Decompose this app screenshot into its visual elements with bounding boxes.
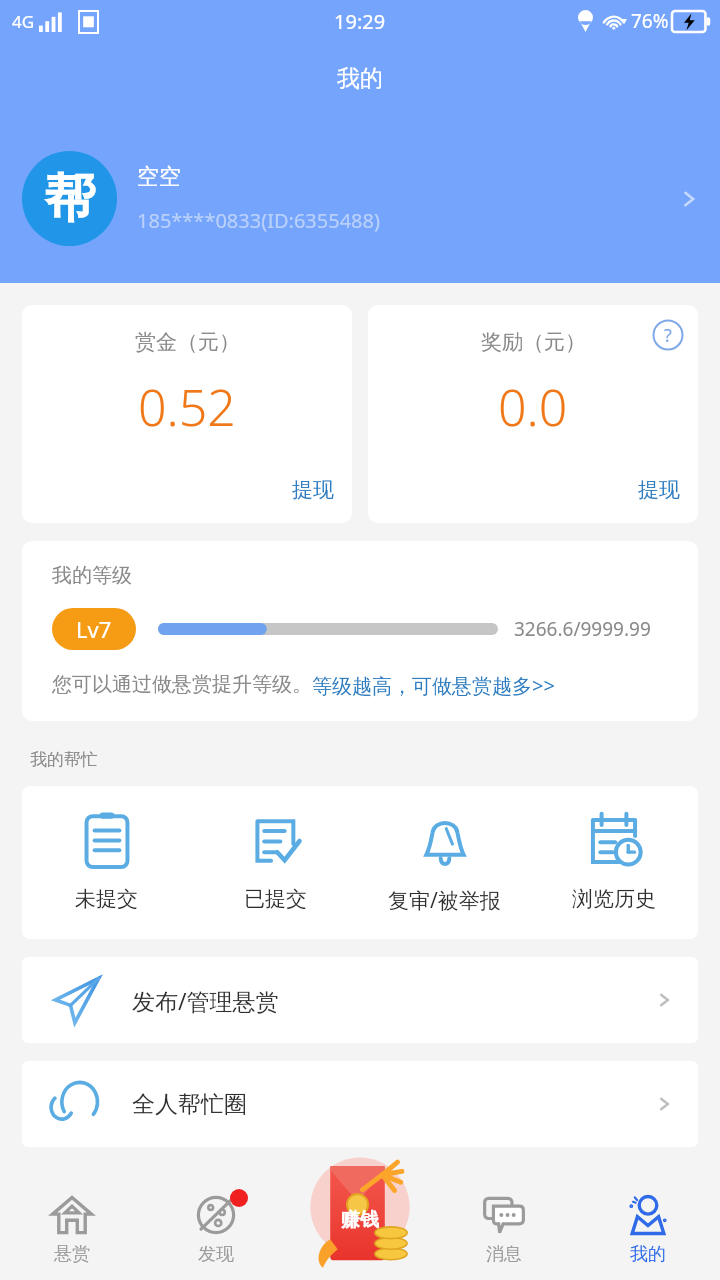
staticText: 悬赏 bbox=[54, 1243, 90, 1266]
staticText: 0.52 bbox=[138, 373, 236, 441]
button[interactable]: 复审/被举报 bbox=[360, 808, 529, 917]
button[interactable]: 悬赏 bbox=[0, 1178, 144, 1280]
staticText: 我的帮忙 bbox=[30, 749, 98, 770]
button[interactable]: 浏览历史 bbox=[529, 808, 698, 914]
staticText: 浏览历史 bbox=[572, 886, 656, 912]
button[interactable]: 帮 bbox=[0, 114, 720, 283]
staticText: 赏金（元） bbox=[135, 329, 240, 355]
button[interactable]: 提现 bbox=[292, 477, 352, 523]
staticText: 您可以通过做悬赏提升等级。 bbox=[52, 672, 312, 697]
button[interactable]: 未提交 bbox=[22, 808, 191, 914]
staticText: 0.0 bbox=[498, 373, 568, 441]
staticText: 发现 bbox=[198, 1243, 234, 1266]
staticText: ? bbox=[664, 323, 672, 348]
button[interactable]: 全人帮忙圈 bbox=[22, 1061, 698, 1147]
button[interactable]: 已提交 bbox=[191, 808, 360, 914]
button[interactable]: 发现 bbox=[144, 1178, 288, 1280]
button[interactable]: 赚钱 bbox=[298, 1150, 422, 1274]
staticText: 复审/被举报 bbox=[388, 886, 501, 915]
staticText: 帮 bbox=[44, 166, 96, 232]
staticText: 我的 bbox=[337, 64, 383, 93]
staticText: 空空 bbox=[137, 163, 181, 191]
staticText: 3266.6/9999.99 bbox=[514, 616, 651, 642]
staticText: 未提交 bbox=[75, 886, 138, 912]
button[interactable]: 提现 bbox=[638, 477, 698, 523]
staticText: 全人帮忙圈 bbox=[132, 1090, 652, 1119]
button[interactable]: 我的 bbox=[576, 1178, 720, 1280]
button[interactable]: 消息 bbox=[432, 1178, 576, 1280]
staticText: 奖励（元） bbox=[481, 329, 586, 355]
button[interactable]: Help bbox=[652, 319, 684, 351]
staticText: 消息 bbox=[486, 1243, 522, 1266]
button[interactable]: 等级越高，可做悬赏越多>> bbox=[312, 672, 555, 699]
staticText: 已提交 bbox=[244, 886, 307, 912]
staticText: 赚钱 bbox=[341, 1208, 379, 1232]
staticText: Lv7 bbox=[76, 614, 112, 644]
staticText: 发布/管理悬赏 bbox=[132, 985, 652, 1016]
button[interactable]: 发布/管理悬赏 bbox=[22, 957, 698, 1043]
staticText: 185****0833(ID:6355488) bbox=[137, 207, 380, 234]
staticText: 我的 bbox=[630, 1243, 666, 1266]
staticText: 76% bbox=[631, 8, 669, 34]
staticText: 4G bbox=[12, 10, 35, 33]
staticText: 19:29 bbox=[334, 8, 386, 35]
staticText: 我的等级 bbox=[52, 563, 132, 588]
